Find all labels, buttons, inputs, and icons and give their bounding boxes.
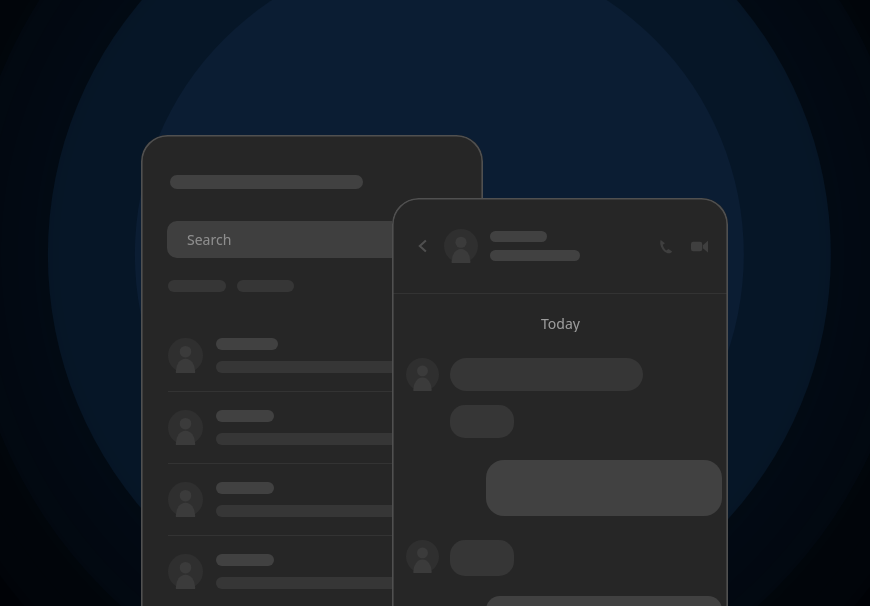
button[interactable]: Back — [410, 233, 436, 259]
button[interactable] — [486, 596, 722, 606]
button[interactable] — [141, 392, 483, 463]
button[interactable] — [450, 405, 514, 438]
button[interactable] — [237, 280, 294, 292]
button[interactable] — [450, 540, 514, 576]
staticText: Today — [541, 314, 580, 332]
button[interactable]: Call — [652, 233, 678, 259]
button[interactable] — [170, 175, 363, 189]
button[interactable] — [141, 464, 483, 535]
button[interactable] — [168, 280, 226, 292]
staticText: Search — [187, 230, 232, 249]
button[interactable]: Video call — [686, 233, 712, 259]
button[interactable] — [486, 460, 722, 516]
button[interactable] — [141, 536, 483, 606]
button[interactable] — [141, 320, 483, 391]
button[interactable]: Search — [167, 221, 467, 258]
